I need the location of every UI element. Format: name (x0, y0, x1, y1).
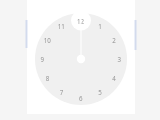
button[interactable]: Analog clock (0, 0, 160, 120)
